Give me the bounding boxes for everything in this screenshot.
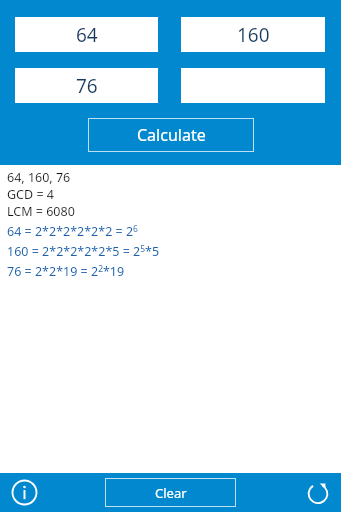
button[interactable]: Reset xyxy=(301,476,334,509)
button[interactable]: Clear xyxy=(105,478,236,507)
button[interactable]: 160 xyxy=(181,17,325,52)
staticText: GCD = 4 xyxy=(7,186,54,203)
staticText: 64, 160, 76 xyxy=(7,169,71,186)
staticText: 76 xyxy=(76,73,98,99)
staticText: Calculate xyxy=(137,124,206,146)
button[interactable]: 64 xyxy=(15,17,158,52)
staticText: 160 = 2*2*2*2*2*5 = 25*5 xyxy=(7,243,160,260)
button[interactable]: 76 xyxy=(15,68,158,103)
staticText: LCM = 6080 xyxy=(7,203,75,220)
button[interactable]: Calculate xyxy=(88,118,254,152)
staticText: 160 xyxy=(237,22,270,48)
staticText: 64 = 2*2*2*2*2*2 = 26 xyxy=(7,223,138,240)
button[interactable]: Info xyxy=(8,476,41,509)
staticText: 64 xyxy=(76,22,98,48)
staticText: 76 = 2*2*19 = 22*19 xyxy=(7,263,125,280)
staticText: Clear xyxy=(155,484,187,502)
